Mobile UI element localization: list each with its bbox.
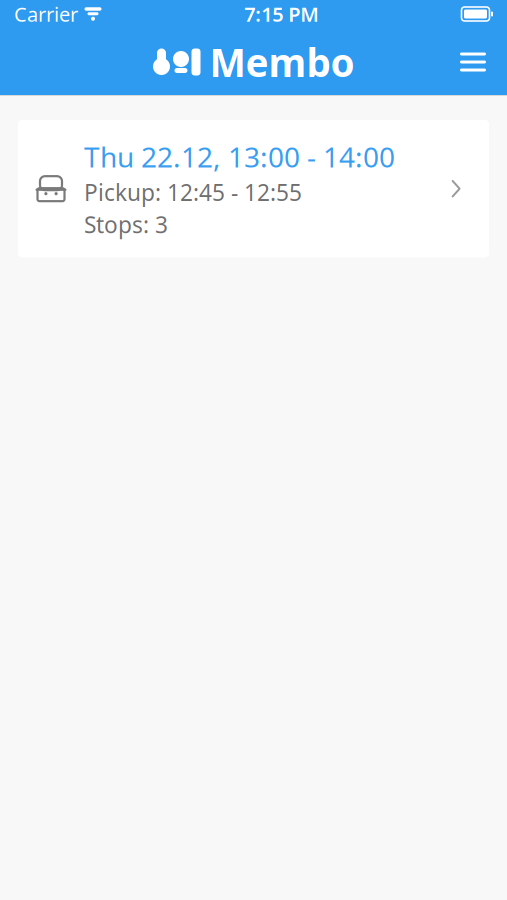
staticText: Carrier bbox=[14, 1, 78, 27]
staticText: Thu 22.12, 13:00 - 14:00 bbox=[84, 138, 395, 175]
staticText: 7:15 PM bbox=[244, 1, 319, 27]
staticText: Stops: 3 bbox=[84, 209, 168, 239]
staticText: Pickup: 12:45 - 12:55 bbox=[84, 177, 302, 207]
staticText: Membo bbox=[209, 36, 354, 88]
button[interactable]: Menu bbox=[447, 38, 499, 86]
button[interactable]: Thu 22.12, 13:00 - 14:00 bbox=[18, 120, 489, 257]
